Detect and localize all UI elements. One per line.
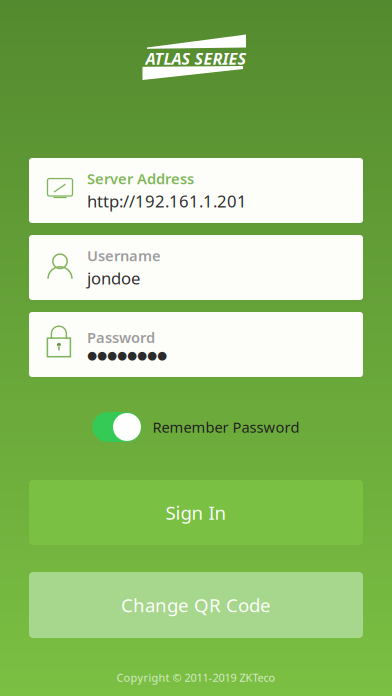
staticText: Remember Password bbox=[152, 417, 299, 437]
staticText: http://192.161.1.201 bbox=[87, 190, 247, 212]
staticText: jondoe bbox=[87, 267, 140, 289]
button[interactable]: Password bbox=[29, 312, 363, 377]
staticText: Username bbox=[87, 246, 161, 266]
button[interactable]: Change QR Code bbox=[29, 572, 363, 638]
button[interactable]: Server Address bbox=[29, 158, 363, 223]
staticText: Sign In bbox=[165, 500, 226, 525]
button[interactable]: Remember Password bbox=[92, 412, 299, 442]
staticText: ATLAS SERIES bbox=[145, 47, 246, 70]
button[interactable]: Sign In bbox=[29, 480, 363, 545]
staticText: Copyright © 2011-2019 ZKTeco bbox=[116, 670, 275, 685]
staticText: Change QR Code bbox=[121, 592, 271, 618]
staticText: Password bbox=[87, 327, 155, 347]
staticText: Server Address bbox=[87, 169, 194, 189]
staticText: ●●●●●●●● bbox=[87, 348, 167, 362]
button[interactable]: Username bbox=[29, 235, 363, 300]
